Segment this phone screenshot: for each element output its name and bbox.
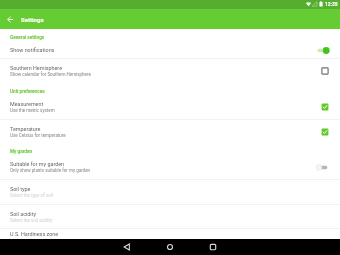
- staticText: General settings: [10, 35, 45, 41]
- staticText: U.S. Hardiness zone: [10, 231, 59, 237]
- staticText: Suitable for my garden: [10, 161, 65, 167]
- staticText: Settings: [21, 16, 44, 23]
- button[interactable]: Soil type: [0, 180, 340, 204]
- staticText: Unit preferences: [10, 89, 45, 95]
- button[interactable]: Recent apps: [205, 239, 221, 255]
- button[interactable]: Navigate up: [0, 9, 20, 29]
- button[interactable]: U.S. Hardiness zone: [0, 229, 340, 239]
- button[interactable]: Soil acidity: [0, 205, 340, 228]
- button[interactable]: Southern Hemisphere: [0, 59, 340, 83]
- button[interactable]: Suitable for my garden: [0, 155, 340, 179]
- staticText: Show notifications: [10, 47, 55, 53]
- staticText: Only show plants suitable for my garden: [10, 168, 91, 173]
- staticText: Use Celsius for temperature: [10, 133, 66, 138]
- button[interactable]: Checked: [315, 125, 335, 139]
- button[interactable]: Back: [119, 239, 135, 255]
- staticText: Southern Hemisphere: [10, 65, 62, 71]
- button[interactable]: Temperature: [0, 120, 340, 144]
- staticText: Soil type: [10, 186, 31, 192]
- button[interactable]: Show notifications: [0, 41, 340, 58]
- staticText: Measurement: [10, 101, 44, 107]
- staticText: Select the type of soil: [10, 193, 53, 198]
- staticText: Select the soil acidity: [10, 218, 53, 223]
- button[interactable]: Unchecked: [315, 64, 335, 78]
- button[interactable]: Toggle on: [315, 43, 335, 57]
- staticText: My garden: [10, 149, 33, 155]
- staticText: 12:35: [325, 1, 338, 7]
- staticText: Use the metric system: [10, 108, 55, 113]
- staticText: Temperature: [10, 126, 41, 132]
- button[interactable]: Measurement: [0, 95, 340, 119]
- staticText: Soil acidity: [10, 211, 36, 217]
- staticText: Show calendar for Southern Hemisphere: [10, 72, 91, 77]
- button[interactable]: Toggle off: [315, 160, 335, 174]
- button[interactable]: Home: [162, 239, 178, 255]
- button[interactable]: Checked: [315, 100, 335, 114]
